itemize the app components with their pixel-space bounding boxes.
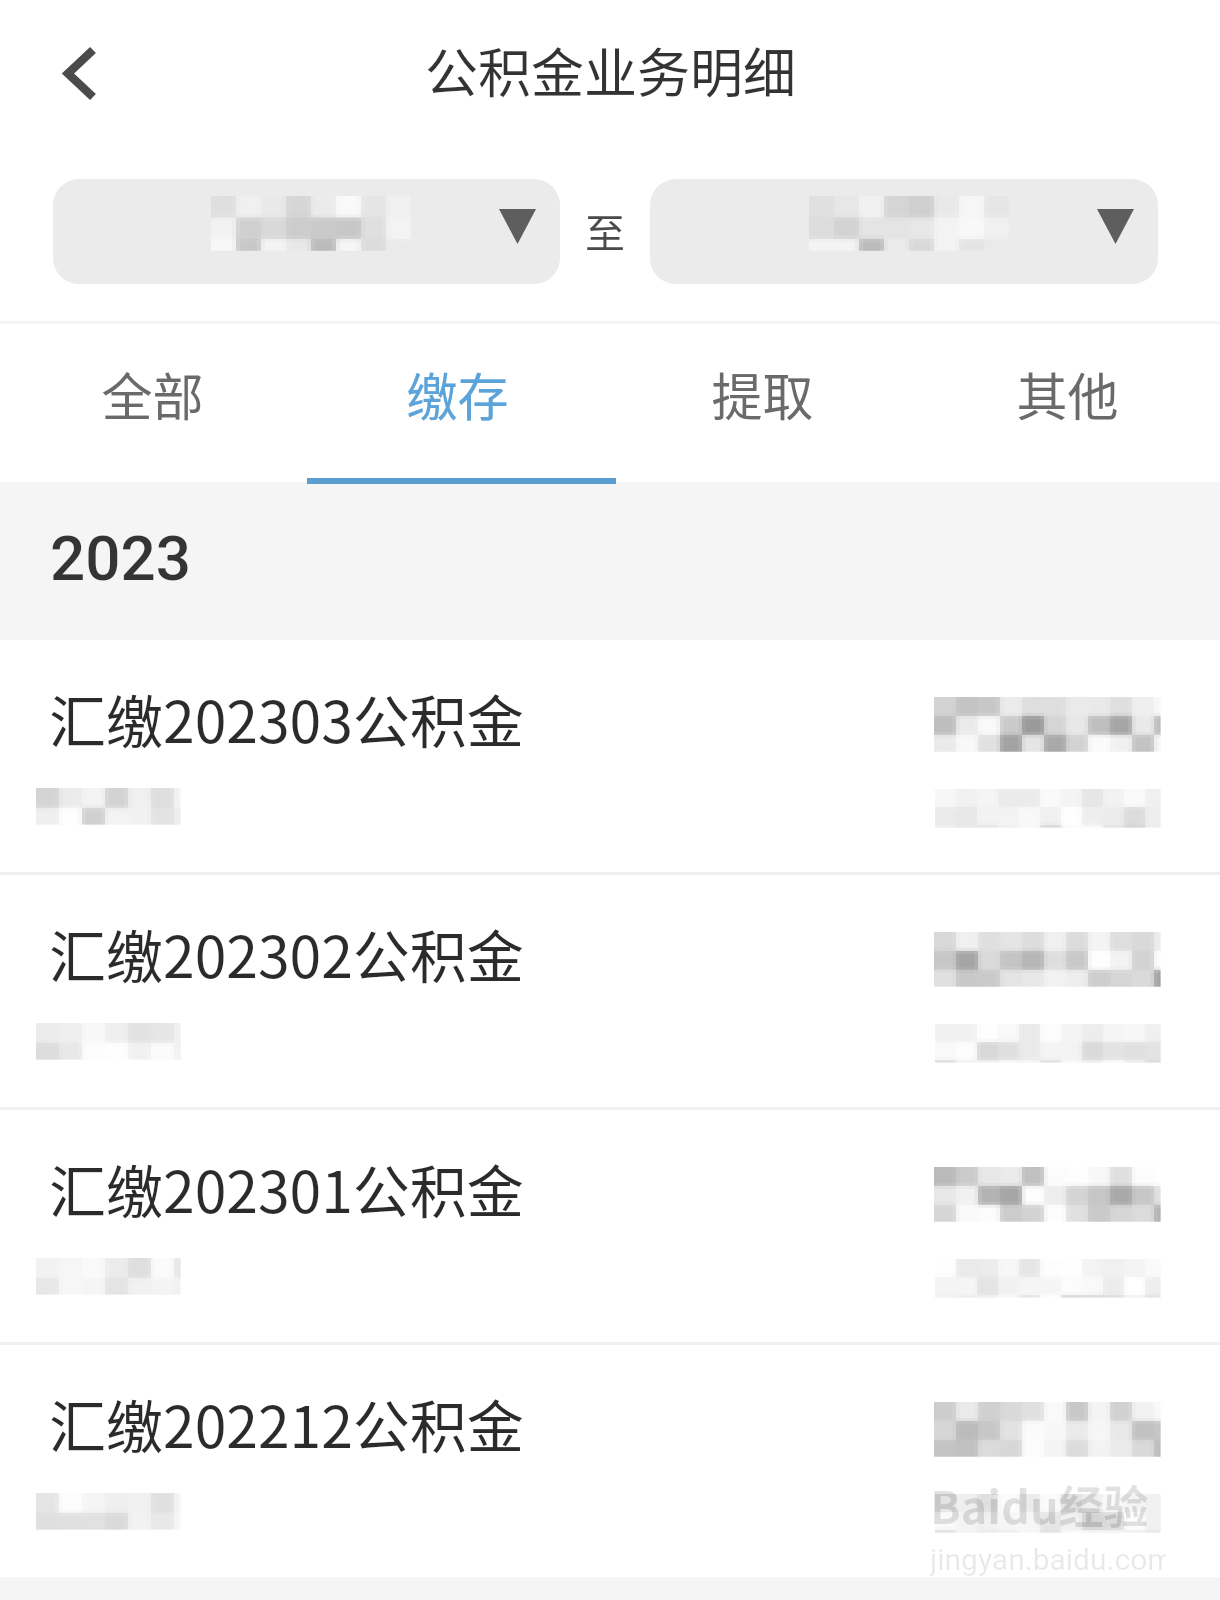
- staticText: 汇缴202212公积金: [49, 1382, 524, 1465]
- button[interactable]: 汇缴202212公积金: [0, 1345, 1220, 1577]
- staticText: 汇缴202301公积金: [49, 1147, 524, 1230]
- staticText: 公积金业务明细: [425, 32, 796, 109]
- staticText: 汇缴202302公积金: [49, 912, 524, 995]
- button[interactable]: 缴存: [305, 319, 610, 482]
- staticText: 汇缴202303公积金: [49, 677, 524, 760]
- staticText: 提取: [711, 357, 814, 431]
- staticText: jingyan.baidu.com: [930, 1542, 1166, 1577]
- staticText: 全部: [101, 357, 204, 431]
- staticText: 缴存: [406, 357, 509, 431]
- button[interactable]: 提取: [610, 319, 915, 482]
- button[interactable]: 汇缴202301公积金: [0, 1110, 1220, 1342]
- button[interactable]: Select date: [53, 179, 560, 284]
- button[interactable]: 汇缴202302公积金: [0, 875, 1220, 1107]
- button[interactable]: Select date: [650, 179, 1158, 284]
- button[interactable]: 汇缴202303公积金: [0, 640, 1220, 872]
- staticText: 2023: [50, 522, 191, 595]
- button[interactable]: Back: [28, 28, 116, 116]
- staticText: 至: [585, 202, 625, 260]
- staticText: Baidu经验: [930, 1472, 1149, 1537]
- button[interactable]: 全部: [0, 319, 305, 482]
- staticText: 其他: [1016, 357, 1119, 431]
- button[interactable]: 其他: [915, 319, 1220, 482]
